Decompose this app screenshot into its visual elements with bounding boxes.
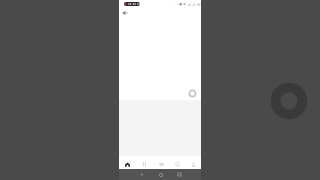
button[interactable]: Recording timer [124, 2, 140, 6]
button[interactable]: Back [132, 169, 151, 180]
button[interactable]: Home [151, 169, 170, 180]
button[interactable]: Activity [136, 156, 153, 169]
button[interactable]: Home [119, 156, 136, 169]
button[interactable]: Saved [169, 156, 185, 169]
button[interactable]: Back [121, 9, 129, 17]
button[interactable]: Recent apps [170, 169, 189, 180]
button[interactable]: Profile [185, 156, 201, 169]
button[interactable]: Feed [153, 156, 169, 169]
